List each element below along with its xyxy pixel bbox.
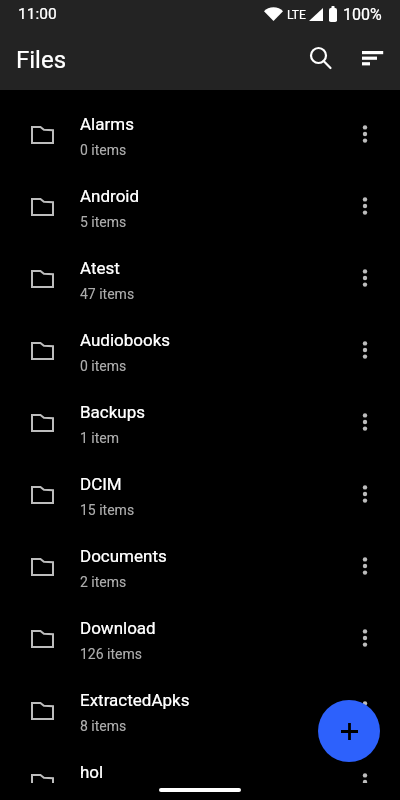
- button[interactable]: Documents: [0, 530, 400, 602]
- button[interactable]: Download: [0, 602, 400, 674]
- staticText: 126 items: [80, 646, 142, 662]
- staticText: Alarms: [80, 114, 134, 134]
- staticText: 100%: [343, 5, 382, 24]
- button[interactable]: Add: [318, 700, 380, 762]
- staticText: Files: [16, 46, 67, 74]
- button[interactable]: Search: [297, 35, 345, 83]
- staticText: Download: [80, 618, 156, 638]
- staticText: 8 items: [80, 718, 127, 734]
- staticText: Audiobooks: [80, 330, 171, 350]
- button[interactable]: More options: [341, 746, 389, 783]
- button[interactable]: hol: [0, 746, 400, 783]
- button[interactable]: Backups: [0, 386, 400, 458]
- staticText: 0 items: [80, 142, 127, 158]
- staticText: Atest: [80, 258, 120, 278]
- staticText: LTE: [287, 8, 306, 22]
- staticText: 1 item: [80, 430, 120, 446]
- button[interactable]: ExtractedApks: [0, 674, 400, 746]
- staticText: Documents: [80, 546, 167, 566]
- staticText: hol: [80, 762, 104, 782]
- button[interactable]: More options: [341, 674, 389, 746]
- button[interactable]: More options: [341, 602, 389, 674]
- staticText: DCIM: [80, 474, 122, 494]
- button[interactable]: More options: [341, 242, 389, 314]
- button[interactable]: More options: [341, 386, 389, 458]
- button[interactable]: More options: [341, 530, 389, 602]
- button[interactable]: Atest: [0, 242, 400, 314]
- staticText: Backups: [80, 402, 146, 422]
- button[interactable]: More options: [341, 170, 389, 242]
- button[interactable]: Alarms: [0, 98, 400, 170]
- button[interactable]: Android: [0, 170, 400, 242]
- staticText: 15 items: [80, 502, 135, 518]
- staticText: Android: [80, 186, 140, 206]
- button[interactable]: More options: [341, 314, 389, 386]
- staticText: ExtractedApks: [80, 690, 190, 710]
- staticText: 5 items: [80, 214, 127, 230]
- staticText: 47 items: [80, 286, 135, 302]
- button[interactable]: Sort: [349, 35, 397, 83]
- staticText: 0 items: [80, 358, 127, 374]
- button[interactable]: Audiobooks: [0, 314, 400, 386]
- button[interactable]: More options: [341, 458, 389, 530]
- button[interactable]: DCIM: [0, 458, 400, 530]
- button[interactable]: More options: [341, 98, 389, 170]
- staticText: 11:00: [18, 5, 57, 23]
- staticText: 2 items: [80, 574, 127, 590]
